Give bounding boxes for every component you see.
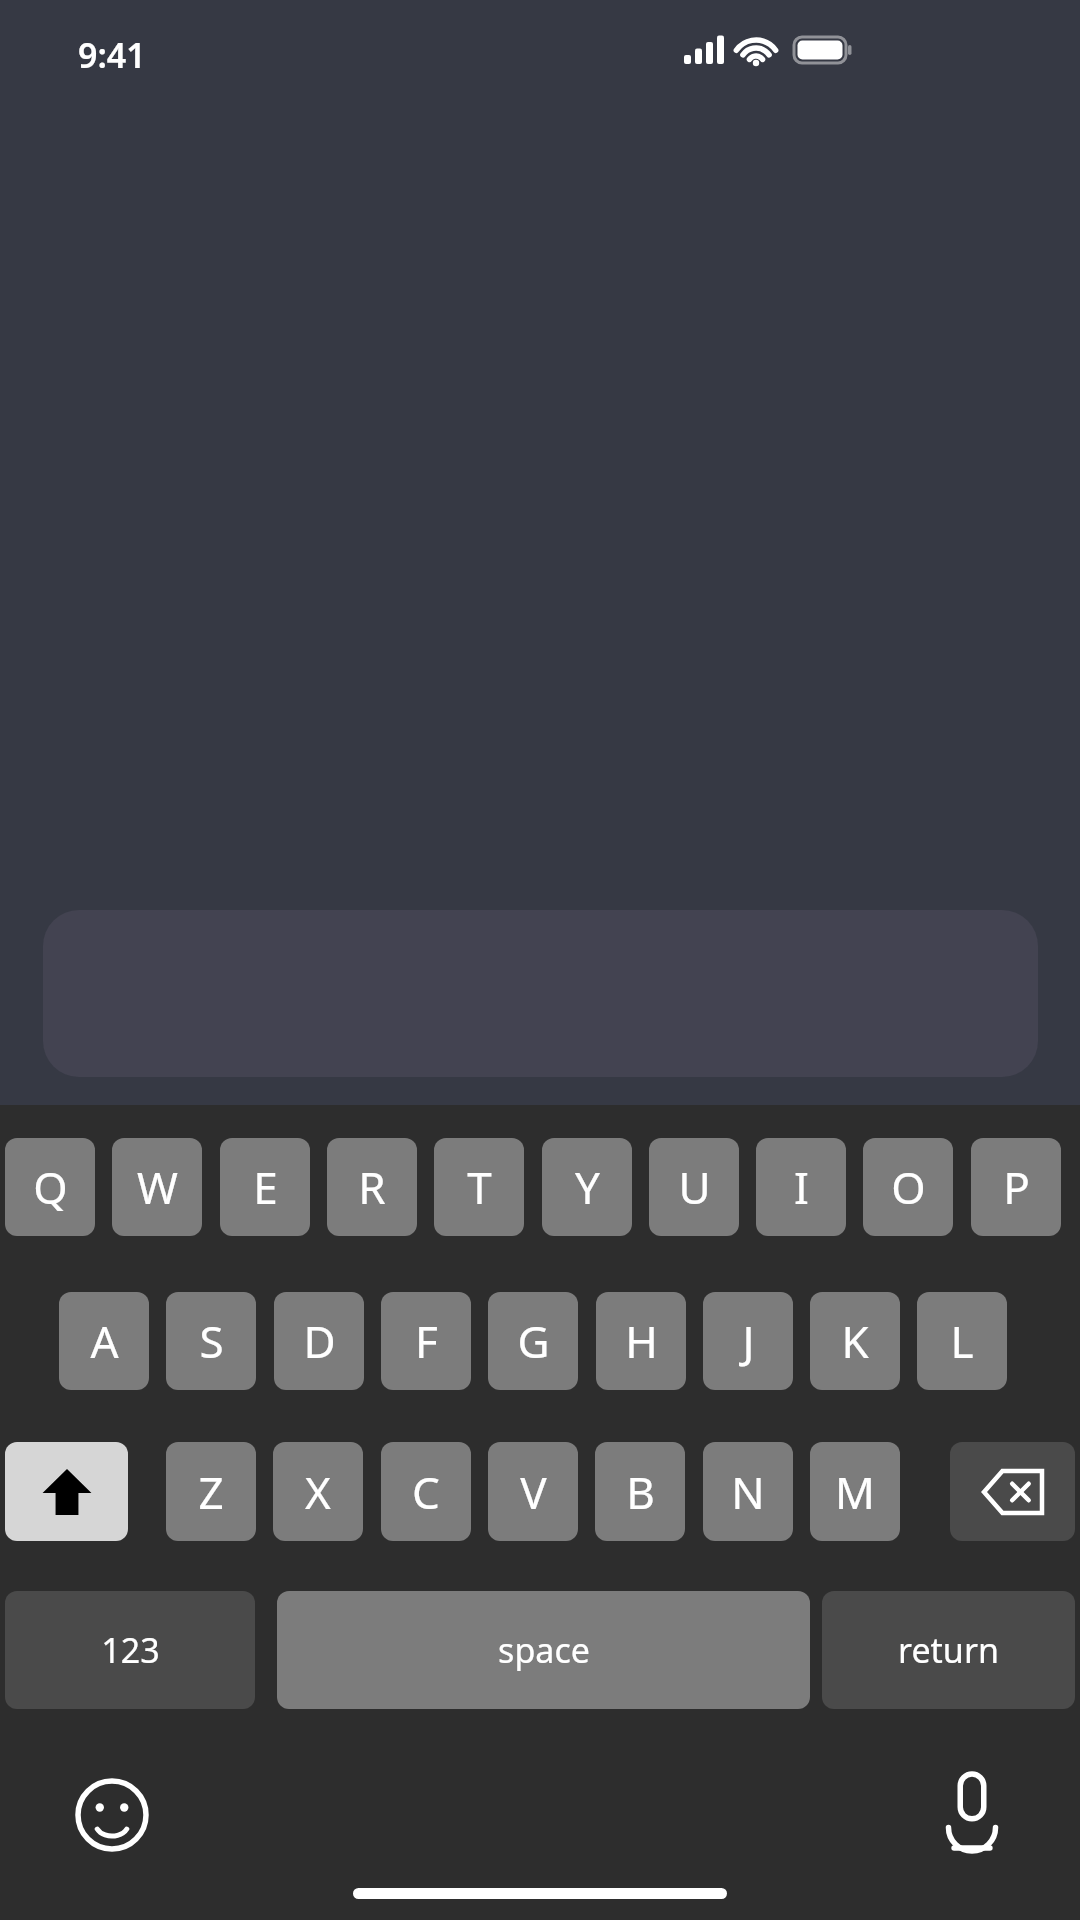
button[interactable]: K [810, 1292, 900, 1390]
button[interactable]: N [703, 1442, 793, 1541]
button[interactable]: P [971, 1138, 1061, 1236]
button[interactable]: Backspace [950, 1442, 1075, 1541]
staticText: A [90, 1311, 119, 1371]
button[interactable]: I [756, 1138, 846, 1236]
staticText: I [794, 1157, 809, 1217]
button[interactable]: G [488, 1292, 578, 1390]
button[interactable]: B [595, 1442, 685, 1541]
button[interactable]: Q [5, 1138, 95, 1236]
staticText: K [841, 1311, 869, 1371]
staticText: P [1003, 1157, 1030, 1217]
staticText: H [625, 1311, 658, 1371]
staticText: Q [33, 1157, 68, 1217]
button[interactable]: D [274, 1292, 364, 1390]
button[interactable]: Shift [5, 1442, 128, 1541]
button[interactable]: S [166, 1292, 256, 1390]
button[interactable]: U [649, 1138, 739, 1236]
staticText: N [731, 1462, 765, 1522]
button[interactable]: Y [542, 1138, 632, 1236]
button[interactable]: space [277, 1591, 810, 1709]
staticText: X [305, 1462, 331, 1522]
button[interactable]: Z [166, 1442, 256, 1541]
staticText: F [415, 1311, 438, 1371]
staticText: O [891, 1157, 926, 1217]
staticText: M [835, 1462, 875, 1522]
staticText: E [253, 1157, 278, 1217]
staticText: R [358, 1157, 386, 1217]
staticText: D [303, 1311, 336, 1371]
button[interactable]: V [488, 1442, 578, 1541]
button[interactable]: Dictation [922, 1762, 1022, 1862]
staticText: T [467, 1157, 492, 1217]
button[interactable]: A [59, 1292, 149, 1390]
staticText: L [950, 1311, 974, 1371]
button[interactable]: return [822, 1591, 1075, 1709]
button[interactable]: O [863, 1138, 953, 1236]
staticText: 9:41 [78, 32, 146, 78]
staticText: Z [198, 1462, 224, 1522]
button[interactable]: T [434, 1138, 524, 1236]
button[interactable]: L [917, 1292, 1007, 1390]
staticText: S [199, 1311, 224, 1371]
button[interactable]: 123 [5, 1591, 255, 1709]
staticText: U [678, 1157, 711, 1217]
staticText: G [517, 1311, 550, 1371]
button[interactable]: M [810, 1442, 900, 1541]
staticText: J [742, 1311, 755, 1371]
staticText: V [520, 1462, 547, 1522]
button[interactable]: Emoji keyboard [62, 1765, 162, 1865]
button[interactable]: W [112, 1138, 202, 1236]
button[interactable]: X [273, 1442, 363, 1541]
button[interactable]: C [381, 1442, 471, 1541]
staticText: return [898, 1627, 999, 1673]
staticText: W [137, 1157, 178, 1217]
button[interactable]: J [703, 1292, 793, 1390]
button[interactable]: R [327, 1138, 417, 1236]
staticText: C [412, 1462, 440, 1522]
button[interactable]: E [220, 1138, 310, 1236]
staticText: 123 [101, 1627, 160, 1673]
staticText: Y [575, 1157, 600, 1217]
staticText: space [498, 1627, 590, 1673]
button[interactable]: H [596, 1292, 686, 1390]
button[interactable]: F [381, 1292, 471, 1390]
staticText: B [626, 1462, 655, 1522]
